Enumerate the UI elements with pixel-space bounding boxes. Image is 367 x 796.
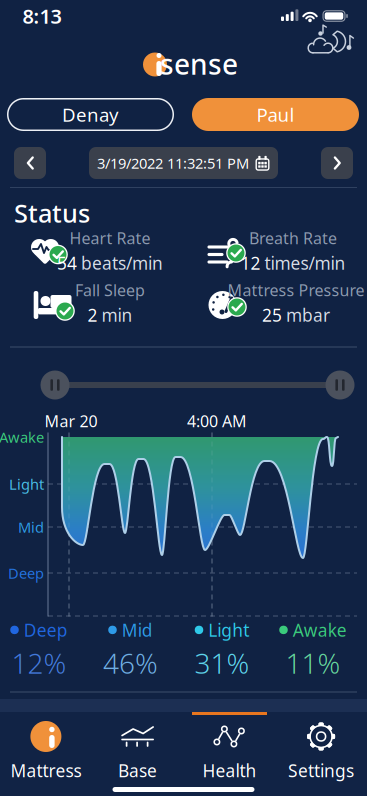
staticText: Denay: [62, 102, 119, 127]
staticText: Mar 20: [44, 410, 97, 432]
staticText: sense: [160, 45, 238, 83]
staticText: Mattress: [10, 759, 81, 782]
staticText: Heart Rate: [69, 227, 150, 249]
staticText: 12: [240, 252, 260, 275]
staticText: 4:00 AM: [187, 410, 247, 432]
staticText: Deep: [24, 618, 68, 641]
button[interactable]: Sleep sounds: [0, 0, 367, 796]
button[interactable]: Next day: [321, 147, 353, 179]
staticText: 2: [87, 304, 97, 327]
staticText: 54: [57, 252, 77, 275]
staticText: 46%: [103, 644, 158, 682]
staticText: Mattress Pressure: [227, 279, 364, 301]
staticText: Awake: [293, 618, 347, 641]
button[interactable]: Settings: [276, 720, 366, 782]
staticText: Breath Rate: [249, 227, 337, 249]
staticText: 3/19/2022 11:32:51 PM: [97, 153, 249, 173]
staticText: 25: [262, 304, 282, 327]
staticText: Awake: [0, 427, 44, 447]
staticText: Paul: [256, 102, 294, 127]
button[interactable]: Paul: [192, 98, 359, 131]
staticText: Light: [208, 618, 249, 641]
staticText: times/min: [264, 252, 345, 275]
button[interactable]: Base: [93, 720, 183, 782]
staticText: Health: [202, 759, 256, 782]
staticText: Base: [118, 759, 157, 782]
staticText: Mid: [18, 517, 44, 537]
button[interactable]: Denay: [7, 98, 174, 131]
staticText: Fall Sleep: [75, 279, 145, 301]
button[interactable]: Mattress: [1, 720, 91, 782]
staticText: Status: [14, 196, 90, 230]
staticText: 31%: [194, 644, 249, 682]
staticText: beats/min: [81, 252, 163, 275]
staticText: mbar: [286, 304, 330, 327]
staticText: Mid: [122, 618, 153, 641]
staticText: 11%: [285, 644, 340, 682]
button[interactable]: 3/19/2022 11:32:51 PM: [89, 147, 278, 179]
staticText: 8:13: [22, 3, 61, 29]
staticText: min: [101, 304, 132, 327]
button[interactable]: Health: [184, 720, 274, 782]
staticText: Light: [9, 474, 44, 494]
staticText: 12%: [11, 644, 66, 682]
staticText: Deep: [8, 563, 44, 583]
button[interactable]: Previous day: [14, 147, 46, 179]
staticText: Settings: [288, 759, 354, 782]
